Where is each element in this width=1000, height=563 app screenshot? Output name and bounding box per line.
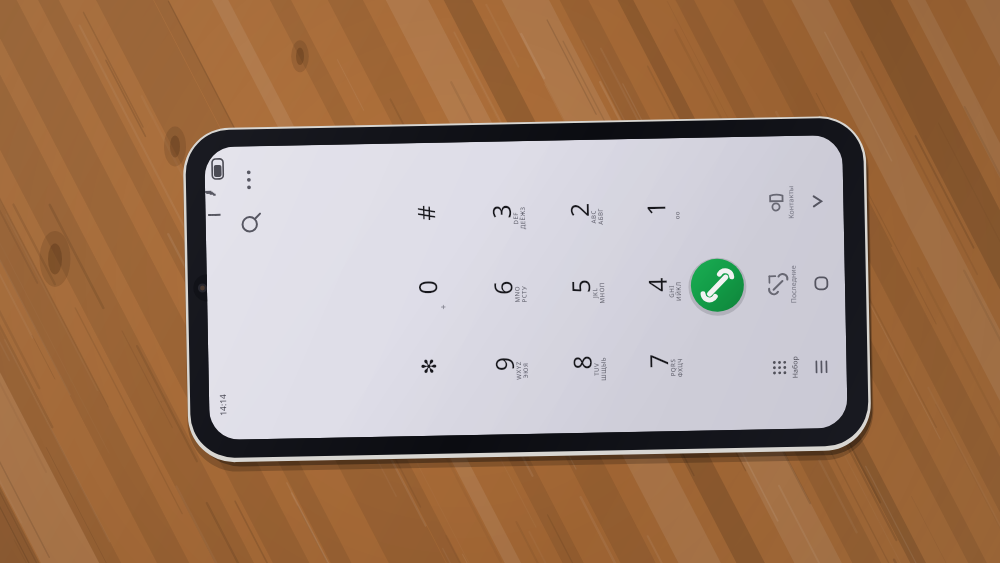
button[interactable] (0, 0, 1000, 563)
